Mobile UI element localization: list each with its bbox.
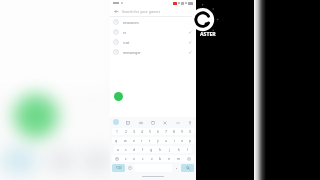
button[interactable]: 9 <box>178 128 186 135</box>
button[interactable]: q <box>112 137 121 144</box>
staticText: rust <box>123 40 130 45</box>
button[interactable]: Insert rs <box>188 30 193 35</box>
staticText: q <box>115 138 118 143</box>
staticText: j <box>169 147 170 152</box>
button[interactable]: d <box>130 146 138 153</box>
staticText: r <box>141 138 143 143</box>
button[interactable]: 8 <box>170 128 178 135</box>
staticText: ASTER <box>200 30 216 37</box>
button[interactable]: z <box>122 155 130 162</box>
button[interactable]: GIF <box>137 119 144 126</box>
button[interactable]: Compose <box>114 92 123 101</box>
button[interactable]: Shift <box>112 155 122 162</box>
button[interactable]: i <box>170 137 178 144</box>
button[interactable]: Insert rust <box>188 40 193 45</box>
staticText: v <box>151 156 153 161</box>
staticText: f <box>142 147 144 152</box>
button[interactable]: f <box>138 146 147 153</box>
staticText: n <box>168 156 171 161</box>
staticText: t <box>149 138 151 143</box>
staticText: resources <box>123 20 139 25</box>
staticText: l <box>187 147 188 152</box>
staticText: b <box>159 156 162 161</box>
button[interactable]: p <box>186 137 194 144</box>
button[interactable]: Stickers <box>124 119 131 126</box>
button[interactable]: y <box>154 137 162 144</box>
staticText: i <box>174 138 175 143</box>
button[interactable]: a <box>114 146 122 153</box>
staticText: 2 <box>125 129 127 134</box>
staticText: 7 <box>165 129 167 134</box>
staticText: ?123 <box>116 166 122 170</box>
staticText: e <box>133 138 135 143</box>
button[interactable]: b <box>156 155 165 162</box>
staticText: messenger <box>123 50 141 55</box>
staticText: o <box>181 138 184 143</box>
button[interactable]: t <box>146 137 154 144</box>
staticText: 0 <box>189 129 191 134</box>
button[interactable]: Google <box>113 119 119 125</box>
staticText: p <box>189 138 192 143</box>
staticText: rs <box>123 30 127 35</box>
staticText: g <box>150 147 153 152</box>
button[interactable]: Period <box>172 164 181 172</box>
button[interactable]: 2 <box>121 128 130 135</box>
staticText: h <box>159 147 162 152</box>
staticText: m <box>177 156 181 161</box>
staticText: d <box>133 147 136 152</box>
button[interactable]: Clipboard <box>149 119 156 126</box>
staticText: 9 <box>181 129 183 134</box>
button[interactable]: x <box>130 155 138 162</box>
button[interactable]: Back <box>110 6 196 16</box>
button[interactable]: Settings <box>186 119 193 126</box>
button[interactable]: 4 <box>138 128 146 135</box>
staticText: 5 <box>149 129 151 134</box>
button[interactable]: r <box>138 137 146 144</box>
button[interactable]: j <box>165 146 174 153</box>
button[interactable]: Comma <box>125 164 134 172</box>
button[interactable]: g <box>147 146 156 153</box>
button[interactable]: Search <box>181 164 194 172</box>
staticText: k <box>178 147 180 152</box>
button[interactable]: Back <box>113 8 119 14</box>
button[interactable]: w <box>121 137 130 144</box>
staticText: w <box>124 138 127 143</box>
button[interactable]: 5 <box>146 128 154 135</box>
button[interactable]: 3 <box>130 128 138 135</box>
button[interactable]: rs <box>110 27 196 37</box>
button[interactable]: 1 <box>112 128 121 135</box>
button[interactable]: resources <box>110 17 196 27</box>
button[interactable]: messenger <box>110 47 196 57</box>
button[interactable]: n <box>165 155 174 162</box>
button[interactable]: h <box>156 146 165 153</box>
staticText: 6 <box>157 129 159 134</box>
staticText: x <box>133 156 135 161</box>
button[interactable]: 7 <box>162 128 170 135</box>
button[interactable]: Backspace <box>183 155 194 162</box>
button[interactable]: s <box>122 146 130 153</box>
button[interactable]: 0 <box>186 128 194 135</box>
staticText: u <box>165 138 168 143</box>
button[interactable]: m <box>174 155 183 162</box>
staticText: 8 <box>173 129 175 134</box>
button[interactable]: ?123 <box>112 164 125 172</box>
button[interactable]: e <box>130 137 138 144</box>
button[interactable]: o <box>178 137 186 144</box>
staticText: a <box>117 147 119 152</box>
staticText: 1 <box>116 129 118 134</box>
button[interactable]: Emoji <box>161 119 168 126</box>
button[interactable]: c <box>138 155 147 162</box>
staticText: s <box>125 147 127 152</box>
button[interactable]: k <box>174 146 183 153</box>
button[interactable]: Theme <box>174 119 181 126</box>
staticText: c <box>142 156 144 161</box>
button[interactable]: u <box>162 137 170 144</box>
button[interactable]: Insert messenger <box>188 50 193 55</box>
staticText: z <box>125 156 127 161</box>
button[interactable]: v <box>147 155 156 162</box>
button[interactable]: 6 <box>154 128 162 135</box>
button[interactable]: rust <box>110 37 196 47</box>
button[interactable]: l <box>183 146 192 153</box>
